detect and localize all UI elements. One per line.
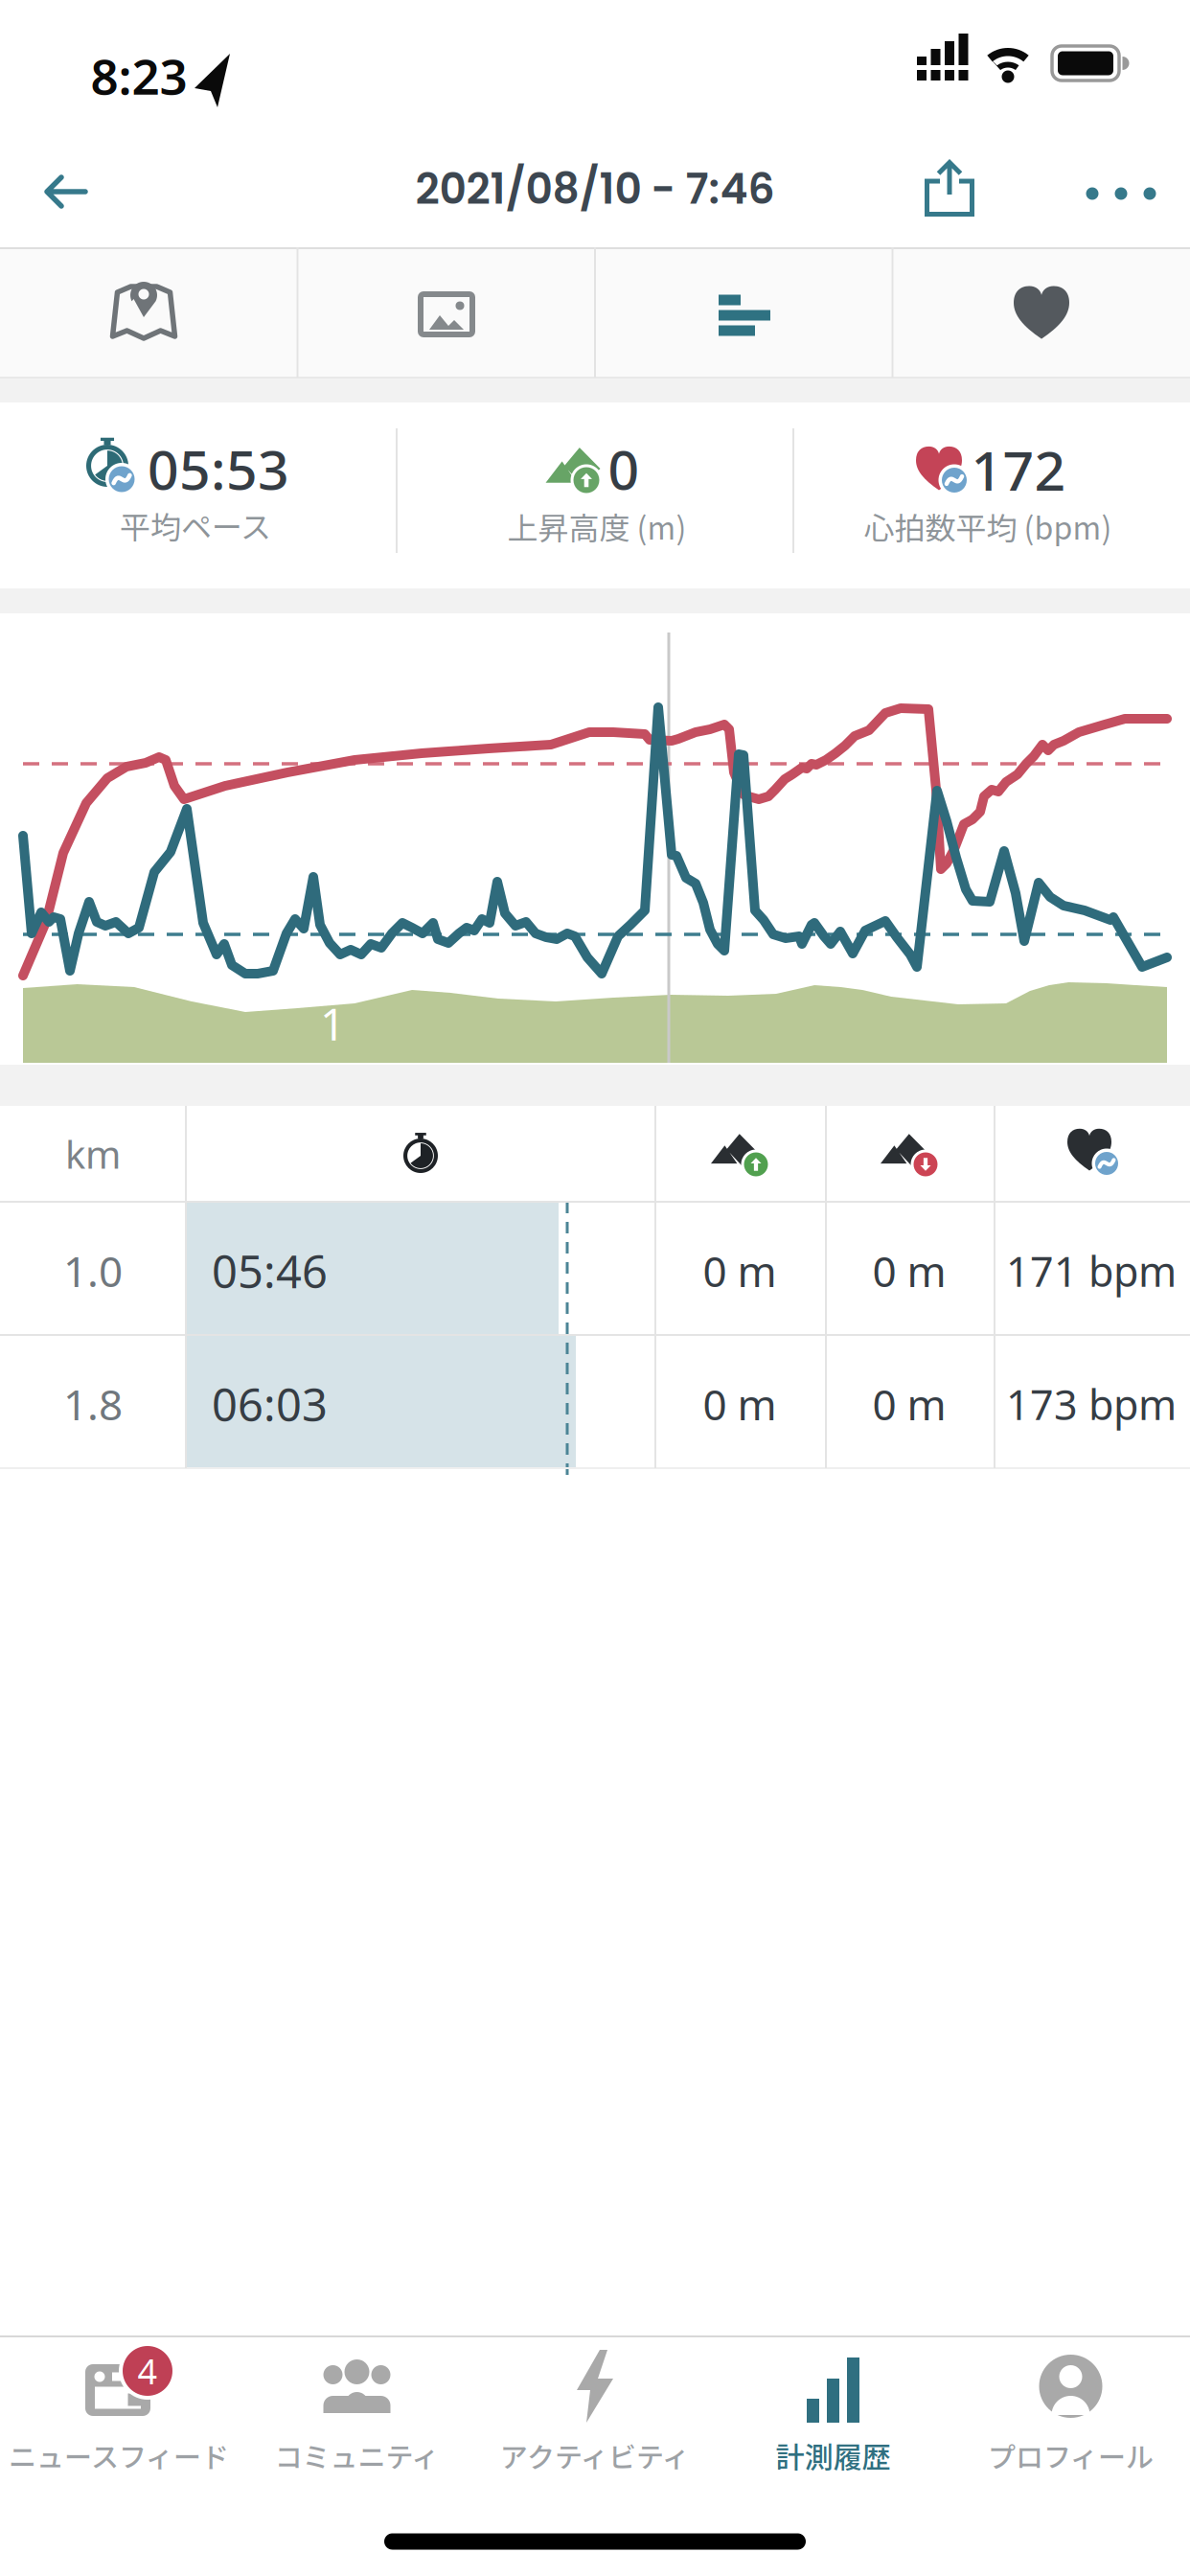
staticText: コミュニティ [275, 2435, 439, 2475]
staticText: 0 m [703, 1375, 777, 1433]
staticText: 172 [971, 432, 1066, 507]
staticText: 0 m [872, 1375, 946, 1433]
staticText: 1.8 [63, 1375, 123, 1433]
button[interactable]: 4 [0, 2338, 238, 2492]
staticText: 0 m [703, 1242, 777, 1299]
staticText: 1 [320, 994, 345, 1054]
staticText: 0 m [872, 1242, 946, 1299]
staticText: 2021/08/10 - 7:46 [415, 159, 775, 218]
staticText: 0 [608, 431, 640, 506]
button[interactable]: コミュニティ [238, 2338, 476, 2492]
staticText: 4 [137, 2347, 158, 2394]
button[interactable]: Heart rate [1012, 285, 1071, 338]
staticText: 06:03 [212, 1373, 328, 1435]
staticText: プロフィール [988, 2435, 1154, 2475]
staticText: km [65, 1128, 121, 1180]
button[interactable]: Map [109, 281, 179, 342]
staticText: 8:23 [91, 42, 187, 109]
staticText: 平均ペース [120, 503, 271, 547]
staticText: 心拍数平均 (bpm) [864, 504, 1112, 548]
staticText: 05:46 [212, 1240, 328, 1301]
staticText: アクティビティ [500, 2435, 690, 2475]
button[interactable]: More options [1075, 172, 1167, 215]
staticText: 1.0 [63, 1242, 123, 1299]
button[interactable]: Share [925, 161, 974, 217]
button[interactable]: Back [41, 173, 91, 210]
button[interactable]: Photos [420, 293, 473, 335]
staticText: ニュースフィード [9, 2435, 229, 2475]
staticText: 173 bpm [1006, 1376, 1177, 1432]
staticText: 上昇高度 (m) [507, 504, 687, 548]
button[interactable]: 計測履歴 [714, 2338, 952, 2492]
staticText: 171 bpm [1006, 1243, 1177, 1299]
staticText: 05:53 [148, 431, 289, 506]
staticText: 計測履歴 [776, 2434, 891, 2476]
button[interactable]: Statistics [719, 295, 772, 336]
button[interactable]: アクティビティ [476, 2338, 714, 2492]
button[interactable]: プロフィール [952, 2338, 1190, 2492]
